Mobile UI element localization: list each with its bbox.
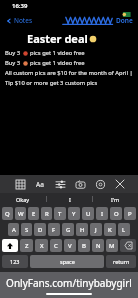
staticText: Tip $10 or more get 3 custom pics: [5, 79, 98, 87]
button[interactable]: Close keyboard: [112, 176, 128, 192]
button[interactable]: D: [34, 223, 46, 236]
button[interactable]: Okay: [0, 193, 46, 205]
staticText: Okay: [16, 196, 30, 203]
button[interactable]: X: [35, 239, 48, 252]
button[interactable]: L: [118, 223, 130, 236]
staticText: T: [58, 210, 62, 218]
staticText: pics get 1 video free: [30, 59, 85, 67]
button[interactable]: Table: [12, 176, 28, 192]
staticText: J: [95, 226, 97, 234]
staticText: space: [60, 258, 75, 265]
button[interactable]: F: [48, 223, 60, 236]
staticText: L: [122, 226, 126, 234]
staticText: 16:39: [12, 2, 28, 10]
staticText: OnlyFans.com/tinybabygirl: [6, 276, 132, 290]
staticText: A: [12, 226, 16, 234]
button[interactable]: U: [82, 207, 94, 220]
staticText: Z: [25, 242, 29, 250]
staticText: Y: [72, 210, 76, 218]
staticText: O: [114, 210, 119, 218]
staticText: G: [66, 226, 71, 234]
button[interactable]: I'm: [93, 193, 138, 205]
staticText: P: [128, 210, 132, 218]
button[interactable]: space: [30, 255, 104, 268]
button[interactable]: Q: [2, 207, 13, 220]
button[interactable]: H: [76, 223, 88, 236]
button[interactable]: O: [110, 207, 122, 220]
staticText: W: [18, 210, 24, 218]
button[interactable]: A: [8, 223, 19, 236]
button[interactable]: K: [104, 223, 116, 236]
staticText: Buy 3: [5, 59, 21, 67]
button[interactable]: E: [28, 207, 39, 220]
button[interactable]: Notes: [4, 14, 34, 27]
button[interactable]: G: [62, 223, 74, 236]
staticText: K: [108, 226, 112, 234]
button[interactable]: T: [54, 207, 66, 220]
button[interactable]: M: [106, 239, 118, 252]
button[interactable]: Camera: [72, 176, 88, 192]
button[interactable]: Y: [68, 207, 80, 220]
staticText: I: [69, 196, 71, 203]
staticText: V: [68, 242, 72, 250]
staticText: H: [80, 226, 85, 234]
staticText: Easter deal: [27, 31, 88, 46]
staticText: All custom pics are $10 for the month of…: [5, 69, 133, 77]
staticText: 123: [10, 258, 20, 265]
button[interactable]: Done: [114, 14, 135, 27]
button[interactable]: Z: [20, 239, 33, 252]
staticText: Done: [116, 16, 133, 25]
button[interactable]: B: [78, 239, 90, 252]
button[interactable]: Checklist: [52, 176, 68, 192]
button[interactable]: Text format: [32, 176, 48, 192]
button[interactable]: J: [90, 223, 102, 236]
button[interactable]: R: [41, 207, 52, 220]
staticText: N: [96, 242, 101, 250]
button[interactable]: C: [50, 239, 62, 252]
button[interactable]: W: [15, 207, 26, 220]
staticText: X: [40, 242, 44, 250]
button[interactable]: Markup: [92, 176, 108, 192]
staticText: B: [82, 242, 86, 250]
button[interactable]: 123: [2, 255, 28, 268]
staticText: E: [32, 210, 36, 218]
staticText: C: [54, 242, 58, 250]
staticText: M: [109, 242, 115, 250]
button[interactable]: S: [21, 223, 32, 236]
staticText: U: [86, 210, 91, 218]
button[interactable]: Shift: [2, 239, 18, 252]
staticText: D: [38, 226, 43, 234]
staticText: S: [25, 226, 29, 234]
staticText: Aa: [36, 180, 44, 189]
button[interactable]: P: [124, 207, 136, 220]
staticText: return: [113, 258, 130, 265]
button[interactable]: return: [106, 255, 136, 268]
button[interactable]: V: [64, 239, 76, 252]
staticText: Q: [5, 210, 10, 218]
staticText: I: [101, 210, 104, 218]
button[interactable]: I: [47, 193, 92, 205]
staticText: pics get 1 video free: [30, 49, 85, 57]
staticText: Notes: [14, 16, 32, 25]
staticText: Buy 3: [5, 49, 21, 57]
button[interactable]: I: [96, 207, 108, 220]
staticText: F: [52, 226, 56, 234]
button[interactable]: N: [92, 239, 104, 252]
staticText: R: [45, 210, 49, 218]
button[interactable]: Backspace: [120, 239, 136, 252]
staticText: I'm: [111, 196, 120, 203]
